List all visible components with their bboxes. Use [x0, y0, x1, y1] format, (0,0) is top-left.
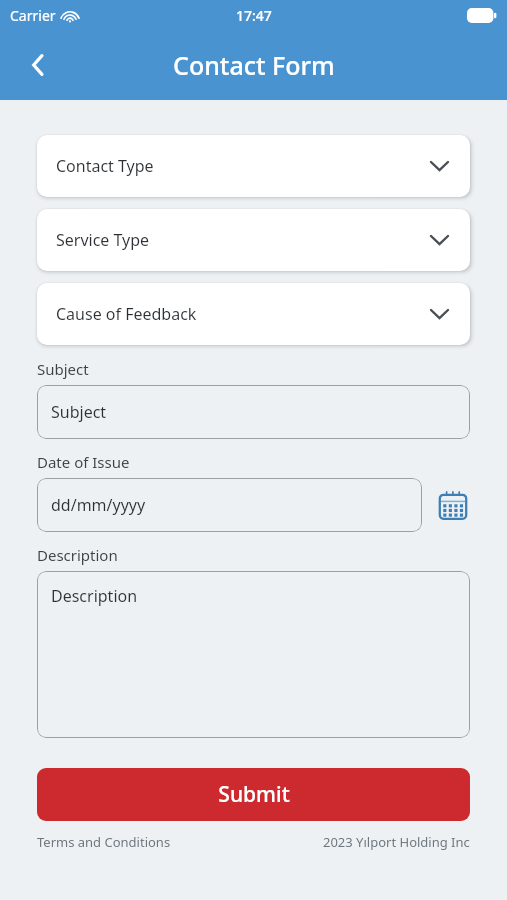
button[interactable]: dd/mm/yyyy	[37, 478, 422, 532]
staticText: Subject	[37, 359, 89, 379]
button[interactable]: Service Type	[37, 209, 470, 271]
staticText: Contact Form	[173, 48, 335, 82]
button[interactable]: Submit	[37, 768, 470, 821]
staticText: 2023 Yılport Holding Inc	[323, 833, 470, 851]
staticText: Cause of Feedback	[56, 303, 197, 325]
staticText: dd/mm/yyyy	[51, 494, 146, 516]
button[interactable]: Pick date	[436, 488, 470, 522]
button[interactable]: Description	[37, 571, 470, 738]
staticText: Service Type	[56, 229, 150, 251]
staticText: Terms and Conditions	[37, 833, 171, 851]
button[interactable]: Subject	[37, 385, 470, 439]
staticText: Subject	[51, 401, 107, 423]
staticText: Submit	[218, 780, 290, 809]
staticText: 17:47	[236, 6, 272, 25]
staticText: Contact Type	[56, 155, 154, 177]
button[interactable]: Cause of Feedback	[37, 283, 470, 345]
staticText: Date of Issue	[37, 452, 130, 472]
staticText: Description	[51, 585, 138, 607]
button[interactable]: Terms and Conditions	[37, 833, 171, 851]
button[interactable]: Back	[18, 45, 58, 85]
staticText: Carrier	[10, 6, 56, 25]
staticText: Description	[37, 545, 118, 565]
button[interactable]: Contact Type	[37, 135, 470, 197]
